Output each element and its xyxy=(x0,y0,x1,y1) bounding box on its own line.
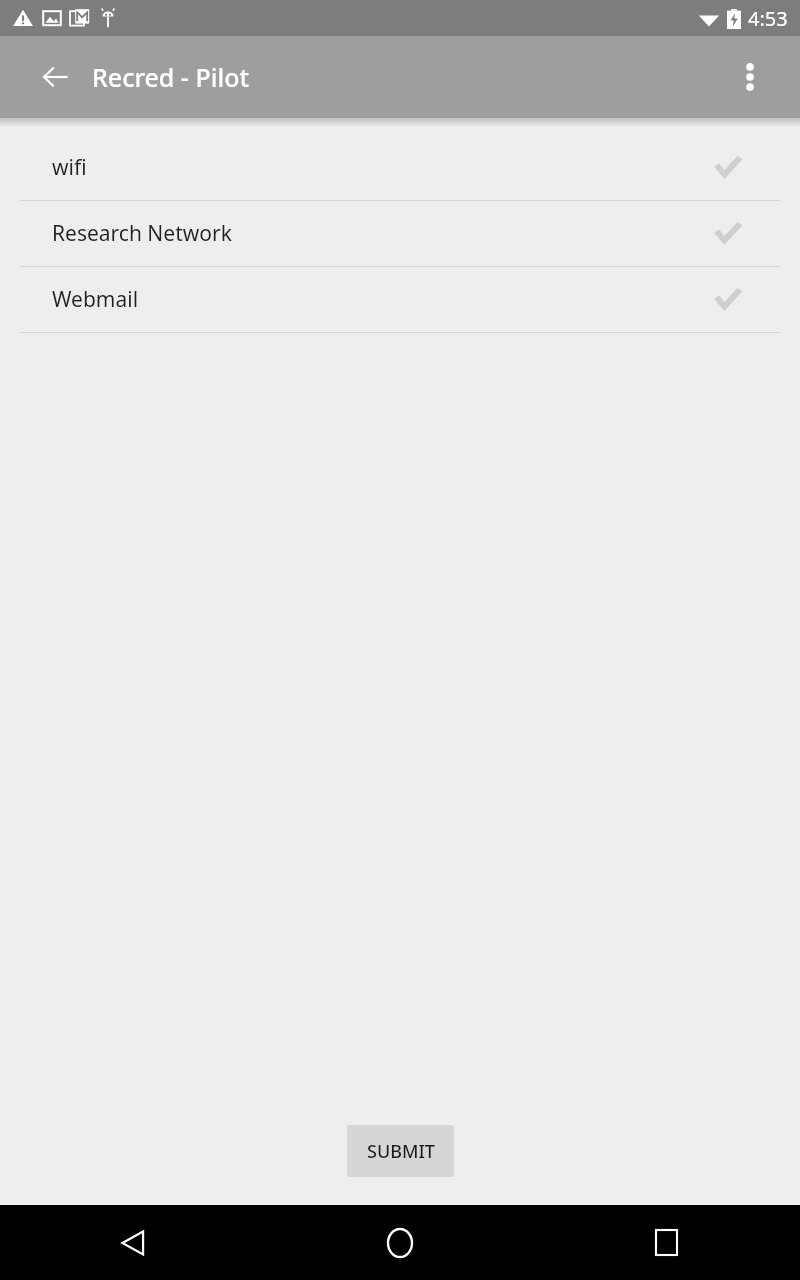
button[interactable]: Webmail xyxy=(0,267,800,332)
button[interactable]: Home xyxy=(266,1205,533,1280)
button[interactable]: Research Network xyxy=(0,201,800,266)
button[interactable]: Back xyxy=(0,1205,266,1280)
button[interactable]: SUBMIT xyxy=(347,1125,454,1177)
staticText: wifi xyxy=(52,153,87,182)
button[interactable]: Recent apps xyxy=(533,1205,800,1280)
staticText: Recred - Pilot xyxy=(92,60,249,94)
staticText: Webmail xyxy=(52,285,139,314)
button[interactable]: Back xyxy=(31,53,79,101)
staticText: Research Network xyxy=(52,219,232,248)
staticText: SUBMIT xyxy=(367,1139,435,1164)
button[interactable]: wifi xyxy=(0,135,800,200)
button[interactable]: More options xyxy=(726,53,774,101)
staticText: 4:53 xyxy=(748,5,788,32)
